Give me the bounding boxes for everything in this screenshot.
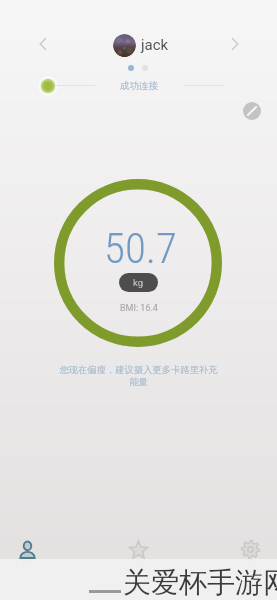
button[interactable]: 设置 — [228, 534, 272, 566]
staticText: BMI: 16.4 — [120, 303, 158, 314]
button[interactable]: Next user — [220, 29, 250, 59]
staticText: 关爱杯手游网 — [123, 565, 277, 600]
staticText: jack — [141, 36, 169, 54]
button[interactable]: 收藏 — [116, 534, 160, 566]
staticText: 成功连接 — [120, 80, 158, 92]
button[interactable]: 用户 — [5, 534, 49, 566]
button[interactable]: jack — [113, 33, 169, 57]
button[interactable]: kg — [119, 273, 158, 292]
staticText: 您现在偏瘦，建议摄入更多卡路里补充能量 — [57, 364, 220, 388]
button[interactable]: Previous user — [28, 29, 58, 59]
staticText: 50.7 — [104, 223, 177, 273]
button[interactable]: Edit — [243, 102, 261, 120]
staticText: kg — [133, 277, 144, 288]
